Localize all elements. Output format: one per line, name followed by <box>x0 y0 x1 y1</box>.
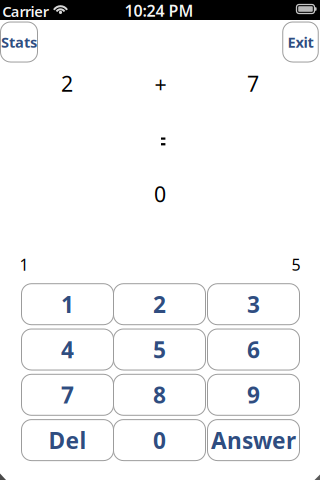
staticText: Carrier <box>2 1 49 21</box>
staticText: 4 <box>61 334 74 364</box>
staticText: Answer <box>211 425 296 455</box>
button[interactable]: 7 <box>21 374 113 415</box>
staticText: 2 <box>153 289 166 319</box>
button[interactable]: 5 <box>113 329 205 370</box>
button[interactable]: 9 <box>207 374 299 415</box>
staticText: 5 <box>153 334 166 364</box>
staticText: 0 <box>153 425 166 455</box>
button[interactable]: Answer <box>207 420 299 461</box>
button[interactable]: 3 <box>207 284 299 325</box>
staticText: 7 <box>247 69 259 98</box>
button[interactable]: Exit <box>283 22 318 62</box>
button[interactable]: 4 <box>21 329 113 370</box>
button[interactable]: Del <box>21 420 113 461</box>
staticText: 5 <box>291 254 300 275</box>
staticText: 2 <box>61 69 73 98</box>
staticText: 7 <box>61 380 74 410</box>
button[interactable]: 0 <box>113 420 205 461</box>
staticText: Stats <box>1 32 37 52</box>
button[interactable]: 6 <box>207 329 299 370</box>
button[interactable]: 2 <box>113 284 205 325</box>
staticText: 1 <box>19 254 28 275</box>
staticText: 10:24 PM <box>124 0 193 21</box>
staticText: + <box>154 70 166 98</box>
staticText: 0 <box>154 180 166 208</box>
staticText: Exit <box>287 32 313 52</box>
staticText: 9 <box>247 380 260 410</box>
staticText: Del <box>48 425 86 455</box>
staticText: 8 <box>153 380 166 410</box>
staticText: 6 <box>247 334 260 364</box>
button[interactable]: 8 <box>113 374 205 415</box>
staticText: 3 <box>247 289 260 319</box>
button[interactable]: 1 <box>21 284 113 325</box>
button[interactable]: Stats <box>0 22 37 62</box>
staticText: 1 <box>61 289 74 319</box>
